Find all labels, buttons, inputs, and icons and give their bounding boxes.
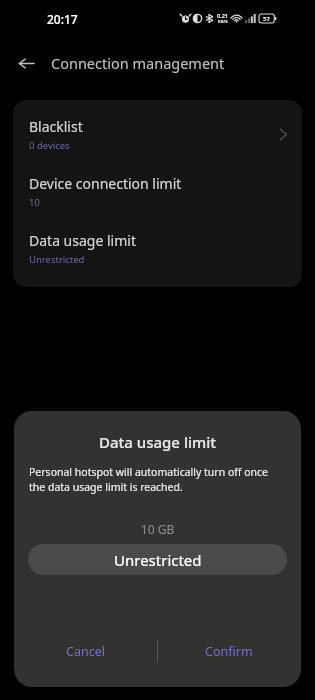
staticText: Data usage limit [14,432,301,452]
button[interactable]: Blacklist [13,114,302,155]
button[interactable]: Cancel [14,623,157,679]
staticText: 57 [263,15,270,23]
staticText: Data usage limit [29,231,136,250]
staticText: 10 [29,196,40,209]
staticText: Unrestricted [29,253,85,266]
staticText: Confirm [205,643,253,660]
staticText: 20:17 [47,11,78,27]
staticText: 0.21 [217,12,228,19]
button[interactable]: Back [11,48,41,78]
staticText: Connection management [51,53,225,73]
staticText: 10 GB [14,521,301,537]
staticText: Device connection limit [29,174,182,193]
staticText: 0 devices [29,139,70,152]
staticText: Unrestricted [114,550,202,570]
button[interactable]: Confirm [157,623,301,679]
staticText: Cancel [66,643,105,660]
staticText: Blacklist [29,117,83,136]
staticText: Personal hotspot will automatically turn… [29,465,286,494]
button[interactable]: Data usage limit [13,228,302,269]
button[interactable]: Unrestricted [28,544,287,575]
staticText: KB/S [218,19,228,25]
button[interactable]: Device connection limit [13,171,302,212]
